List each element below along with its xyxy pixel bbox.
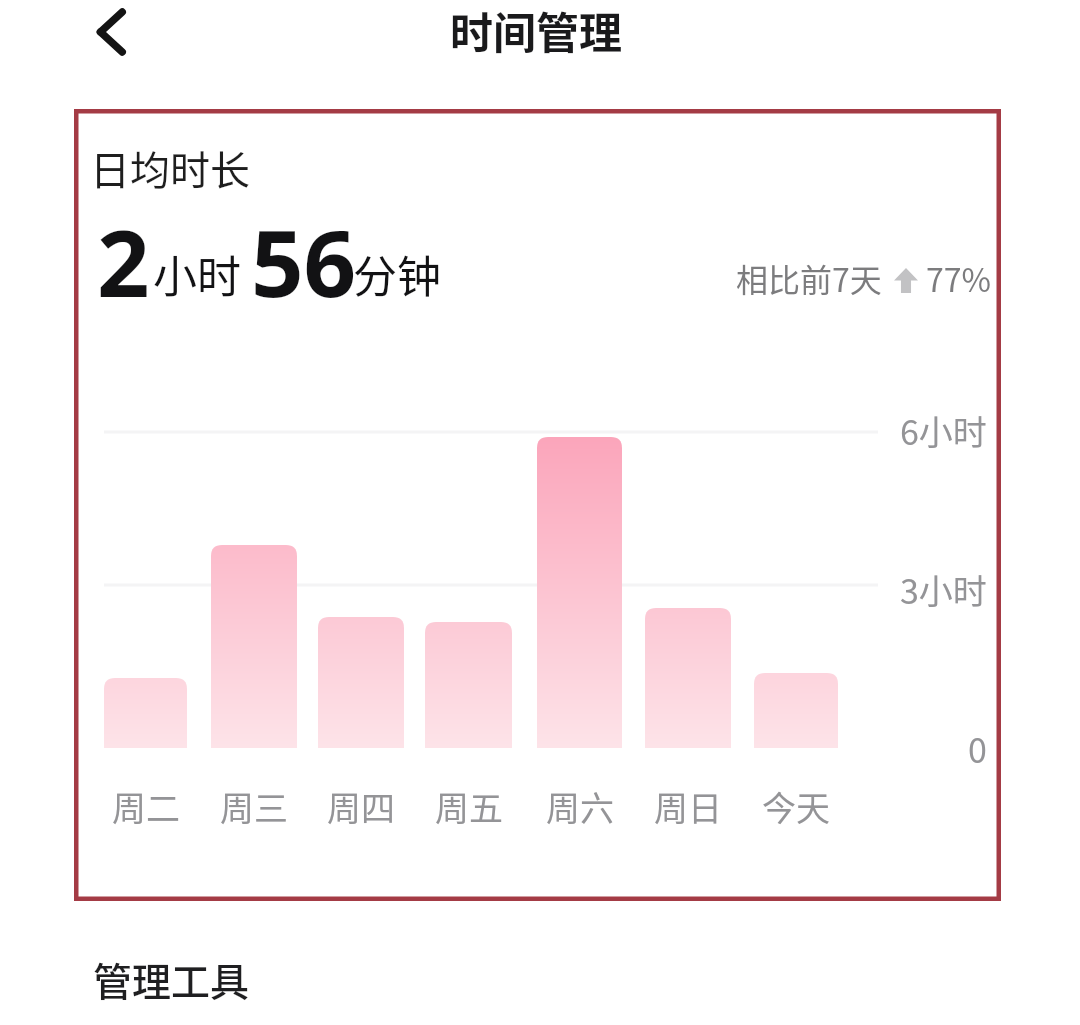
staticText: 周四: [327, 782, 395, 830]
staticText: 6小时: [900, 406, 987, 455]
staticText: 周三: [220, 782, 288, 830]
staticText: 周五: [435, 782, 503, 830]
staticText: 相比前7天: [736, 255, 882, 301]
button[interactable]: 日均时长: [74, 109, 1001, 901]
staticText: 周二: [112, 782, 180, 830]
staticText: 小时: [153, 242, 241, 306]
staticText: 77%: [926, 255, 991, 301]
staticText: 日均时长: [90, 139, 250, 197]
staticText: 周日: [654, 782, 722, 830]
staticText: 56: [251, 199, 357, 324]
staticText: 时间管理: [450, 0, 622, 61]
staticText: 管理工具: [93, 951, 250, 1007]
staticText: 今天: [762, 782, 830, 830]
staticText: 分钟: [353, 242, 441, 306]
staticText: 0: [968, 724, 987, 773]
staticText: 3小时: [900, 565, 987, 614]
staticText: 2: [97, 199, 150, 324]
staticText: 周六: [546, 782, 614, 830]
button[interactable]: Back: [74, 0, 146, 66]
